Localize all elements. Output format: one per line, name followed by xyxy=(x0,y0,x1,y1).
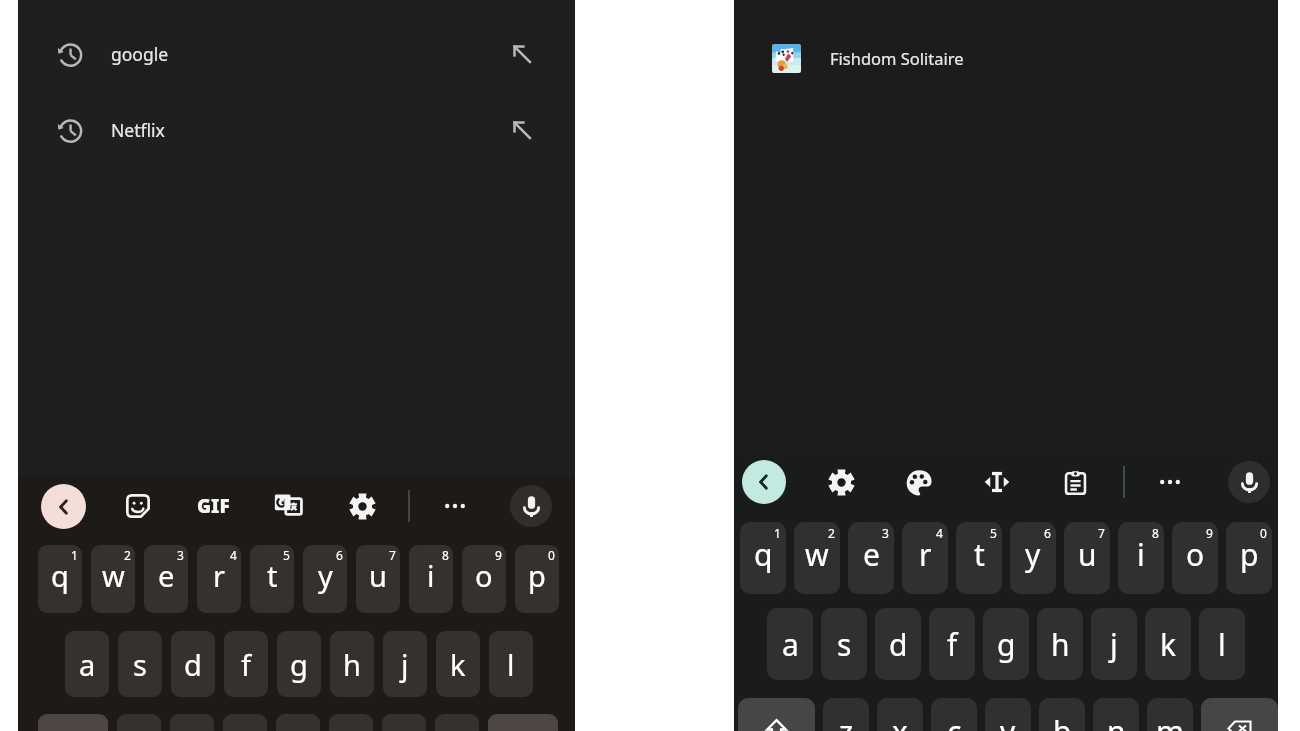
button[interactable]: c xyxy=(223,714,267,731)
staticText: google xyxy=(111,42,169,66)
button[interactable]: 1 xyxy=(740,522,786,594)
button[interactable]: 3 xyxy=(144,545,188,613)
button[interactable]: Stickers xyxy=(116,484,160,528)
button[interactable]: j xyxy=(1091,608,1137,680)
button[interactable]: Translate xyxy=(266,484,310,528)
button[interactable]: a xyxy=(767,608,813,680)
button[interactable]: 6 xyxy=(303,545,347,613)
button[interactable]: Shift xyxy=(738,698,815,731)
staticText: l xyxy=(1218,624,1226,665)
button[interactable]: m xyxy=(1147,698,1193,731)
button[interactable]: k xyxy=(436,631,480,697)
staticText: Netflix xyxy=(111,118,165,142)
staticText: 5 xyxy=(990,525,997,541)
button[interactable]: f xyxy=(224,631,268,697)
button[interactable]: l xyxy=(1199,608,1245,680)
staticText: 6 xyxy=(336,547,343,563)
button[interactable]: x xyxy=(170,714,214,731)
button[interactable]: h xyxy=(330,631,374,697)
button[interactable]: l xyxy=(489,631,533,697)
staticText: j xyxy=(1110,624,1118,665)
button[interactable]: google xyxy=(18,28,575,80)
button[interactable]: a xyxy=(65,631,109,697)
button[interactable]: b xyxy=(1039,698,1085,731)
button[interactable]: 1 xyxy=(38,545,82,613)
button[interactable]: s xyxy=(821,608,867,680)
staticText: GIF xyxy=(197,493,230,519)
button[interactable]: d xyxy=(875,608,921,680)
button[interactable]: 9 xyxy=(1172,522,1218,594)
button[interactable]: 6 xyxy=(1010,522,1056,594)
button[interactable]: v xyxy=(276,714,320,731)
staticText: z xyxy=(839,711,854,731)
button[interactable]: 4 xyxy=(902,522,948,594)
staticText: y xyxy=(318,556,333,595)
button[interactable]: 0 xyxy=(515,545,559,613)
button[interactable]: Back xyxy=(742,460,786,504)
button[interactable]: d xyxy=(171,631,215,697)
button[interactable]: More options xyxy=(1148,460,1192,504)
button[interactable]: b xyxy=(329,714,373,731)
button[interactable]: f xyxy=(929,608,975,680)
button[interactable]: k xyxy=(1145,608,1191,680)
button[interactable]: 0 xyxy=(1226,522,1272,594)
button[interactable]: More options xyxy=(433,484,477,528)
staticText: 9 xyxy=(495,547,502,563)
button[interactable]: Backspace xyxy=(488,714,558,731)
button[interactable]: z xyxy=(823,698,869,731)
button[interactable]: Clipboard xyxy=(1053,460,1097,504)
button[interactable]: GIF xyxy=(191,484,235,528)
button[interactable]: c xyxy=(931,698,977,731)
button[interactable]: h xyxy=(1037,608,1083,680)
staticText: k xyxy=(450,645,466,684)
button[interactable]: 5 xyxy=(956,522,1002,594)
button[interactable]: n xyxy=(1093,698,1139,731)
staticText: w xyxy=(805,534,829,575)
button[interactable]: n xyxy=(382,714,426,731)
staticText: d xyxy=(184,645,202,684)
button[interactable]: x xyxy=(877,698,923,731)
button[interactable]: 2 xyxy=(794,522,840,594)
button[interactable]: Text editing xyxy=(975,460,1019,504)
button[interactable]: 5 xyxy=(250,545,294,613)
button[interactable]: 7 xyxy=(1064,522,1110,594)
button[interactable]: Settings xyxy=(819,460,863,504)
staticText: b xyxy=(1053,711,1072,731)
button[interactable]: Settings xyxy=(340,484,384,528)
button[interactable]: 8 xyxy=(409,545,453,613)
button[interactable]: j xyxy=(383,631,427,697)
button[interactable]: z xyxy=(117,714,161,731)
button[interactable]: Themes xyxy=(897,460,941,504)
button[interactable]: 9 xyxy=(462,545,506,613)
button[interactable]: 4 xyxy=(197,545,241,613)
button[interactable]: Back xyxy=(41,484,86,529)
staticText: 2 xyxy=(124,547,131,563)
staticText: a xyxy=(782,624,799,665)
button[interactable]: 8 xyxy=(1118,522,1164,594)
staticText: k xyxy=(1160,624,1177,665)
staticText: i xyxy=(427,556,435,595)
staticText: p xyxy=(1240,534,1259,575)
button[interactable]: 3 xyxy=(848,522,894,594)
button[interactable]: Shift xyxy=(38,714,108,731)
button[interactable]: Voice input xyxy=(1228,461,1270,503)
button[interactable]: Voice input xyxy=(510,485,552,527)
button[interactable]: v xyxy=(985,698,1031,731)
staticText: t xyxy=(974,534,985,575)
button[interactable]: Fishdom Solitaire xyxy=(734,33,1278,83)
button[interactable]: 2 xyxy=(91,545,135,613)
staticText: a xyxy=(79,645,96,684)
button[interactable]: m xyxy=(435,714,479,731)
button[interactable]: 7 xyxy=(356,545,400,613)
button[interactable]: Backspace xyxy=(1201,698,1278,731)
button[interactable]: g xyxy=(983,608,1029,680)
staticText: o xyxy=(1186,534,1205,575)
button[interactable]: g xyxy=(277,631,321,697)
staticText: 0 xyxy=(548,547,555,563)
button[interactable]: s xyxy=(118,631,162,697)
button[interactable]: Netflix xyxy=(18,104,575,156)
staticText: i xyxy=(1137,534,1145,575)
